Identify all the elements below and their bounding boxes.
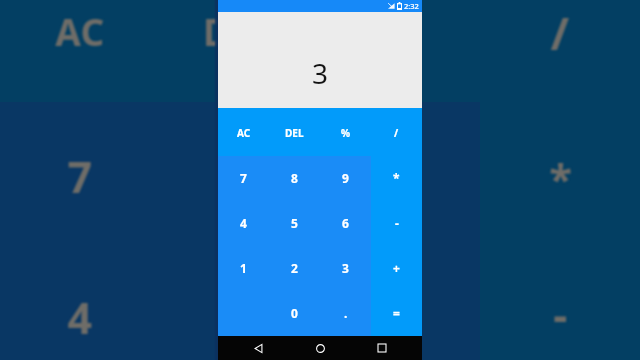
staticText: 6 — [342, 215, 349, 231]
staticText: = — [393, 305, 400, 321]
staticText: * — [549, 149, 573, 206]
button[interactable]: * — [371, 156, 422, 201]
staticText: 3 — [342, 260, 349, 276]
staticText: 7 — [67, 147, 93, 206]
staticText: % — [341, 126, 351, 140]
button[interactable]: 6 — [320, 201, 371, 246]
staticText: 3 — [312, 54, 329, 92]
staticText: 5 — [291, 215, 298, 231]
button[interactable]: Home — [298, 336, 342, 360]
button[interactable]: - — [371, 201, 422, 246]
button[interactable]: . — [320, 291, 371, 336]
button[interactable]: 8 — [269, 156, 320, 201]
staticText: 1 — [240, 260, 247, 276]
button[interactable]: 5 — [269, 201, 320, 246]
staticText: AC — [55, 6, 105, 56]
button[interactable]: Back — [236, 336, 280, 360]
button[interactable]: AC — [218, 108, 269, 156]
button[interactable]: 7 — [218, 156, 269, 201]
button[interactable]: 1 — [218, 246, 269, 291]
staticText: 8 — [291, 170, 298, 186]
button[interactable]: 4 — [218, 201, 269, 246]
button[interactable]: 9 — [320, 156, 371, 201]
staticText: . — [344, 305, 348, 321]
button[interactable]: Recent apps — [360, 336, 404, 360]
staticText: DEL — [203, 6, 273, 56]
button[interactable]: / — [371, 108, 422, 156]
button[interactable]: 2 — [269, 246, 320, 291]
button[interactable]: % — [320, 108, 371, 156]
staticText: 4 — [67, 288, 93, 347]
staticText: DEL — [285, 126, 304, 140]
staticText: 2 — [291, 260, 298, 276]
button[interactable]: 3 — [320, 246, 371, 291]
staticText: - — [553, 284, 568, 344]
staticText: * — [393, 170, 400, 186]
staticText: 4 — [240, 215, 247, 231]
staticText: AC — [237, 126, 251, 140]
staticText: / — [394, 126, 399, 140]
staticText: / — [550, 2, 570, 63]
staticText: 0 — [291, 305, 298, 321]
staticText: 9 — [342, 170, 349, 186]
button[interactable]: DEL — [269, 108, 320, 156]
button[interactable]: = — [371, 291, 422, 336]
staticText: 2:32 — [404, 1, 419, 11]
button[interactable]: 0 — [269, 291, 320, 336]
staticText: - — [395, 215, 399, 231]
staticText: 7 — [240, 170, 247, 186]
staticText: + — [393, 260, 400, 276]
button[interactable]: + — [371, 246, 422, 291]
